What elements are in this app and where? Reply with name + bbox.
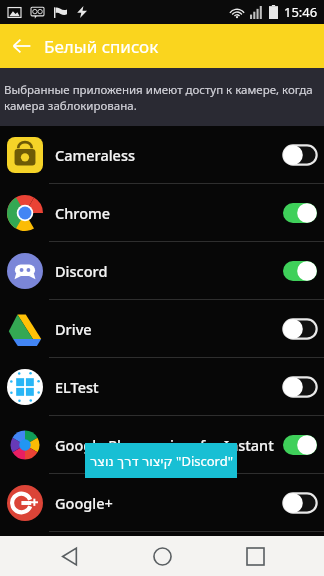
button[interactable] [283, 493, 317, 513]
button[interactable] [283, 203, 317, 223]
button[interactable] [283, 261, 317, 281]
button[interactable] [283, 435, 317, 455]
button[interactable]: Recents [231, 536, 279, 576]
button[interactable]: Chrome [0, 184, 324, 241]
button[interactable]: Back [45, 536, 93, 576]
button[interactable]: Cameraless [0, 126, 324, 183]
staticText: Drive [55, 319, 283, 339]
button[interactable]: Google Play services for Instant A. [0, 416, 324, 473]
staticText: ELTest [55, 377, 283, 397]
staticText: Выбранные приложения имеют доступ к каме… [4, 82, 320, 113]
button[interactable]: Home [138, 536, 186, 576]
button[interactable] [283, 145, 317, 165]
button[interactable]: Google+ [0, 474, 324, 531]
button[interactable] [283, 319, 317, 339]
button[interactable]: ELTest [0, 358, 324, 415]
staticText: Cameraless [55, 145, 283, 165]
staticText: Google Play services for Instant A. [55, 435, 283, 455]
staticText: Google+ [55, 493, 283, 513]
button[interactable]: Back [0, 24, 44, 68]
staticText: קיצור דרך נוצר "Discord" [90, 452, 233, 470]
button[interactable]: Discord [0, 242, 324, 299]
staticText: 15:46 [284, 3, 318, 21]
staticText: Белый список [44, 35, 159, 58]
button[interactable] [283, 377, 317, 397]
button[interactable]: Drive [0, 300, 324, 357]
staticText: Chrome [55, 203, 283, 223]
staticText: Discord [55, 261, 283, 281]
